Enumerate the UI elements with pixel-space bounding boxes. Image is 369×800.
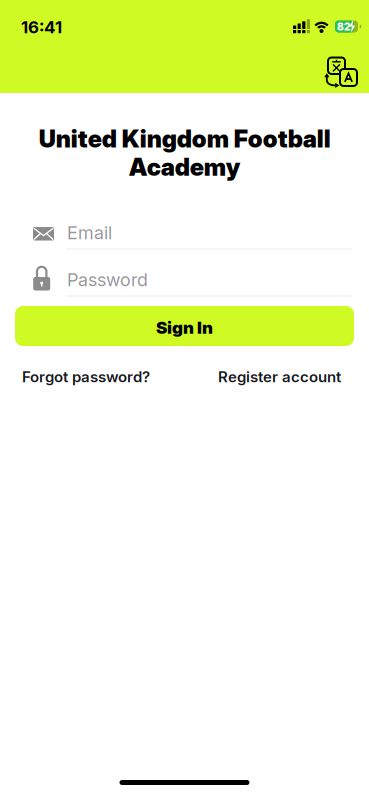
staticText: 82 — [337, 21, 350, 33]
button[interactable]: Translate — [318, 50, 362, 90]
staticText: Password — [67, 269, 148, 290]
staticText: Sign In — [156, 317, 213, 338]
staticText: United Kingdom Football Academy — [38, 124, 330, 181]
button[interactable]: Register account — [218, 368, 341, 386]
button[interactable]: Forgot password? — [22, 368, 150, 386]
button[interactable]: Email — [33, 220, 352, 250]
staticText: Register account — [218, 368, 341, 386]
button[interactable]: Password — [33, 264, 352, 297]
staticText: Email — [67, 222, 112, 243]
staticText: 16:41 — [21, 17, 62, 37]
staticText: Forgot password? — [22, 368, 150, 386]
button[interactable]: Sign In — [15, 306, 354, 346]
